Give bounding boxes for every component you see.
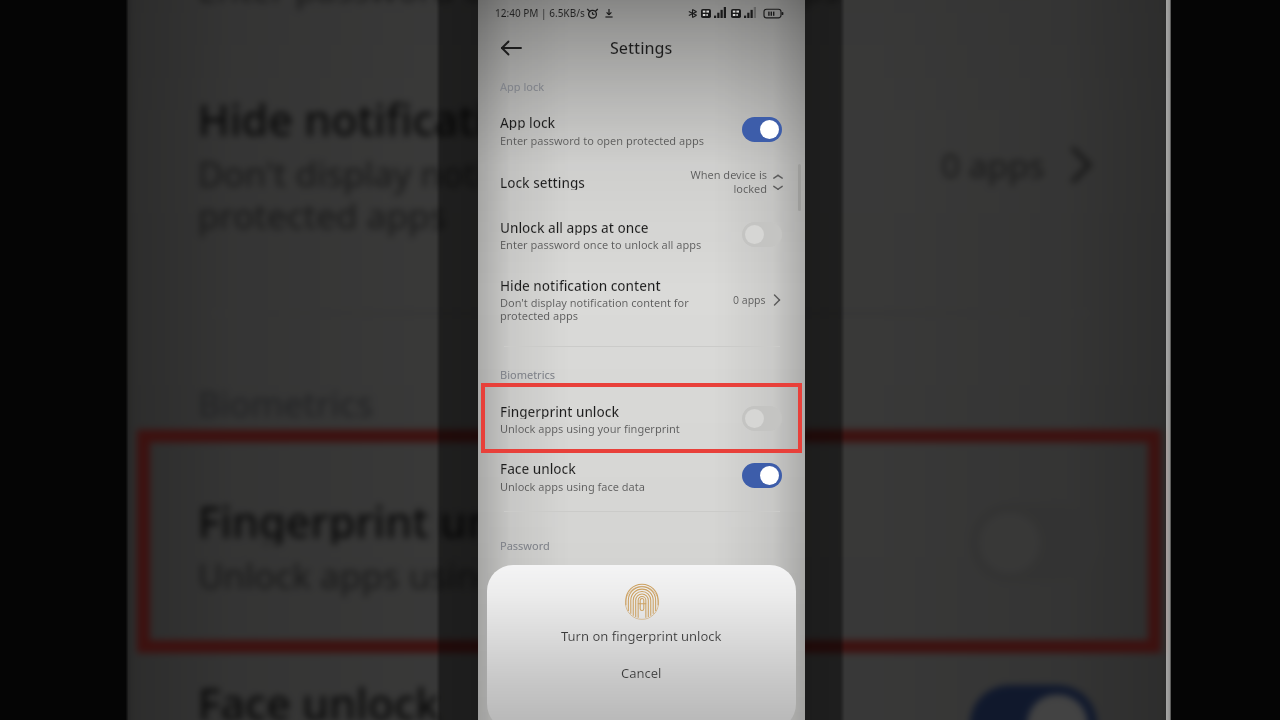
- staticText: Fingerprint unlock: [198, 493, 577, 544]
- button[interactable]: [127, 0, 1171, 31]
- staticText: Settings: [610, 37, 673, 59]
- staticText: App lock: [500, 79, 545, 93]
- button[interactable]: [478, 166, 805, 202]
- staticText: 0 apps: [733, 293, 766, 307]
- staticText: Turn on fingerprint unlock: [561, 627, 722, 645]
- staticText: Fingerprint unlock: [500, 403, 619, 419]
- button[interactable]: Back: [495, 31, 529, 65]
- button[interactable]: Switch on: [742, 463, 782, 488]
- staticText: Enter password once to unlock all apps: [500, 237, 702, 252]
- staticText: Don't display notification content for: [198, 149, 801, 197]
- staticText: Hide notification content: [500, 277, 661, 293]
- button[interactable]: [478, 212, 805, 258]
- staticText: Biometrics: [198, 379, 376, 423]
- staticText: Unlock apps using your fingerprint: [198, 551, 772, 599]
- staticText: Cancel: [621, 664, 662, 682]
- button[interactable]: [127, 656, 1171, 720]
- button[interactable]: [137, 430, 1161, 653]
- button[interactable]: Cancel: [591, 659, 692, 687]
- staticText: 0 apps: [941, 143, 1046, 187]
- button[interactable]: [478, 106, 805, 152]
- staticText: Unlock apps using your fingerprint: [500, 421, 680, 436]
- staticText: Biometrics: [500, 367, 556, 381]
- staticText: Enter password to open protected apps: [500, 133, 704, 148]
- staticText: Unlock apps using face data: [500, 479, 645, 494]
- staticText: Hide notification content: [198, 92, 711, 143]
- staticText: protected apps: [500, 308, 578, 323]
- button[interactable]: [127, 69, 1171, 248]
- button[interactable]: Switch on: [742, 117, 782, 142]
- staticText: Face unlock: [198, 675, 440, 720]
- staticText: protected apps: [198, 190, 446, 238]
- staticText: 12:40 PM | 6.5KB/s: [495, 6, 585, 20]
- staticText: Unlock all apps at once: [500, 219, 649, 235]
- staticText: Password: [500, 538, 550, 552]
- staticText: Enter password once to unlock all apps: [198, 0, 842, 12]
- button[interactable]: Switch on: [970, 685, 1097, 720]
- button[interactable]: [478, 270, 805, 326]
- button[interactable]: Switch off: [742, 222, 782, 247]
- button[interactable]: [478, 454, 805, 500]
- button[interactable]: [481, 383, 802, 453]
- staticText: Don't display notification content for: [500, 295, 689, 310]
- staticText: Face unlock: [500, 460, 576, 476]
- staticText: Lock settings: [500, 174, 585, 190]
- staticText: When device is locked: [662, 167, 767, 196]
- staticText: App lock: [500, 114, 556, 130]
- button[interactable]: Switch off: [742, 406, 782, 431]
